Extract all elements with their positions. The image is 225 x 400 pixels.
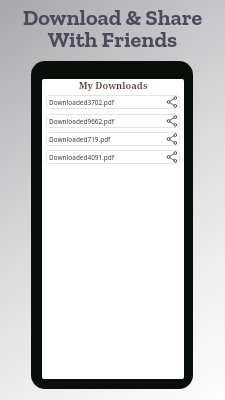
button[interactable]: Downloaded719.pdf	[46, 132, 180, 146]
staticText: Downloaded719.pdf	[49, 135, 111, 144]
button[interactable]: Share	[166, 133, 178, 145]
staticText: Download & Share With Friends	[0, 4, 225, 53]
button[interactable]: Downloaded9662.pdf	[46, 114, 180, 128]
button[interactable]: Share	[166, 115, 178, 127]
button[interactable]: Share	[166, 96, 178, 108]
button[interactable]: Downloaded4091.pdf	[46, 150, 180, 164]
staticText: Downloaded3702.pdf	[49, 98, 115, 107]
button[interactable]: Share	[166, 151, 178, 163]
staticText: Downloaded4091.pdf	[49, 153, 115, 162]
staticText: Downloaded9662.pdf	[49, 117, 115, 126]
button[interactable]: Downloaded3702.pdf	[46, 95, 180, 109]
staticText: My Downloads	[42, 79, 184, 92]
